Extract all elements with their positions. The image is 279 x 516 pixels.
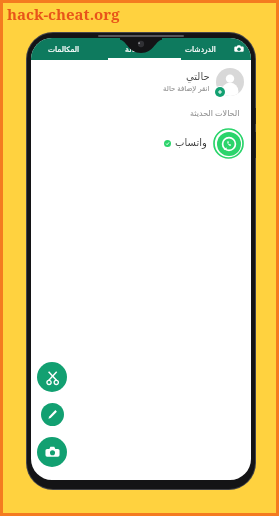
button[interactable]: Write status	[41, 403, 64, 426]
staticText: المكالمات	[48, 45, 80, 54]
staticText: انقر لإضافة حالة	[163, 84, 210, 94]
button[interactable]: Camera	[37, 437, 67, 467]
button[interactable]: Camera	[234, 38, 251, 60]
button[interactable]: الدردشات	[167, 38, 234, 60]
button[interactable]: المكالمات	[31, 38, 97, 60]
staticText: الحالات الحديثة	[190, 107, 240, 118]
button[interactable]: حالة	[97, 38, 167, 60]
staticText: الدردشات	[185, 45, 216, 54]
staticText: hack-cheat.org	[7, 4, 120, 24]
staticText: واتساب	[175, 137, 207, 149]
staticText: حالتي	[186, 71, 210, 83]
button[interactable]: واتساب	[31, 124, 251, 162]
button[interactable]: Trim	[37, 362, 67, 392]
button[interactable]: حالتي	[31, 65, 251, 99]
staticText: حالة	[125, 45, 140, 54]
